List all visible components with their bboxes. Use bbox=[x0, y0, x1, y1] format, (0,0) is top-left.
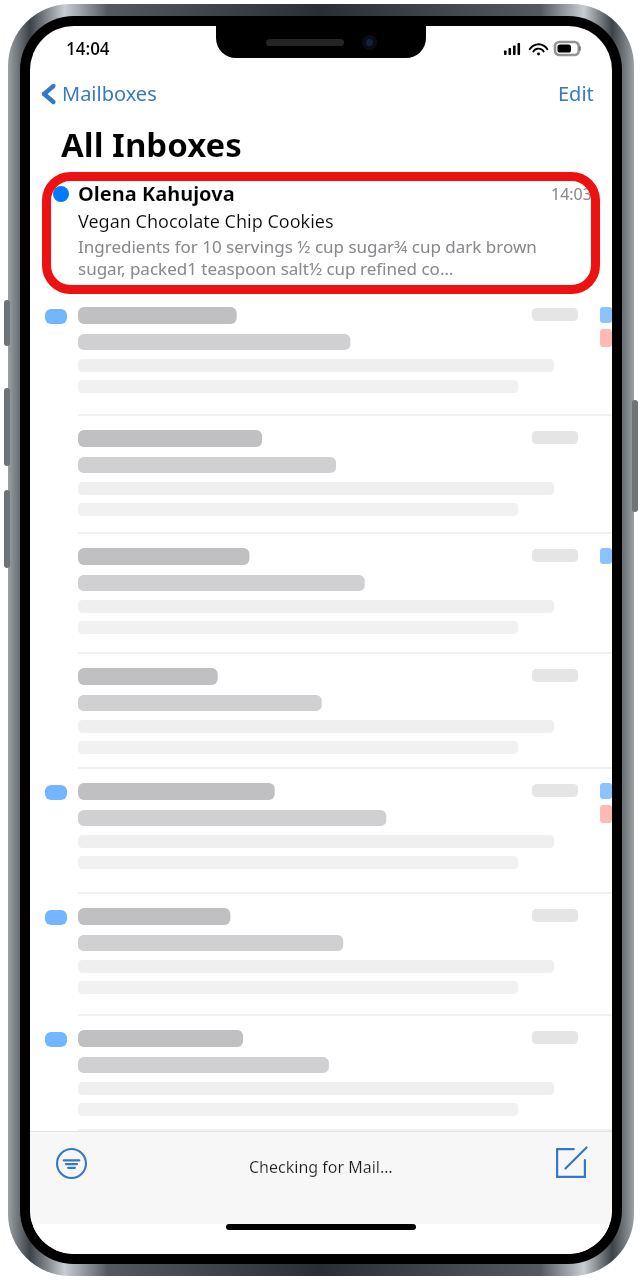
staticText: Vegan Chocolate Chip Cookies bbox=[78, 209, 334, 234]
button[interactable] bbox=[30, 534, 612, 654]
button[interactable]: Filter bbox=[48, 1140, 95, 1187]
staticText: Olena Kahujova bbox=[78, 180, 235, 207]
button[interactable] bbox=[30, 416, 612, 534]
staticText: All Inboxes bbox=[61, 122, 242, 167]
button[interactable]: Compose bbox=[548, 1140, 594, 1186]
button[interactable] bbox=[30, 654, 612, 769]
button[interactable] bbox=[30, 894, 612, 1016]
staticText: Edit bbox=[558, 80, 594, 107]
staticText: Ingredients for 10 servings ½ cup sugar¾… bbox=[78, 235, 586, 280]
staticText: Checking for Mail… bbox=[249, 1156, 393, 1178]
button[interactable]: Mailboxes bbox=[30, 74, 167, 113]
staticText: 14:04 bbox=[66, 37, 110, 60]
button[interactable] bbox=[30, 293, 612, 416]
staticText: Mailboxes bbox=[62, 80, 157, 107]
button[interactable]: Edit bbox=[540, 74, 612, 113]
button[interactable] bbox=[30, 769, 612, 894]
button[interactable]: Olena Kahujova bbox=[30, 172, 612, 293]
staticText: 14:03 bbox=[551, 183, 592, 205]
button[interactable] bbox=[30, 1016, 612, 1131]
